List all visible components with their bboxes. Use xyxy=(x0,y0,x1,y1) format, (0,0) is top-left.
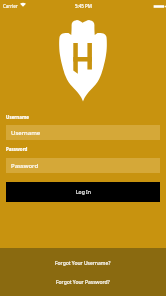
staticText: Username xyxy=(11,129,41,137)
button[interactable]: Password xyxy=(6,158,160,173)
other: Battery xyxy=(153,4,166,9)
button[interactable]: Forgot Your Password? xyxy=(0,276,166,288)
staticText: Log In xyxy=(76,189,91,196)
staticText: Username xyxy=(6,114,30,120)
staticText: Forgot Your Password? xyxy=(56,279,110,286)
other: Wi-Fi signal xyxy=(20,3,26,7)
staticText: 5:45 PM xyxy=(75,3,92,9)
button[interactable]: Log In xyxy=(6,182,160,202)
button[interactable]: Forgot Your Username? xyxy=(0,257,166,269)
button[interactable]: Username xyxy=(6,125,160,140)
staticText: Password xyxy=(6,146,28,152)
staticText: Forgot Your Username? xyxy=(55,260,111,267)
staticText: Password xyxy=(11,162,39,170)
staticText: Carrier xyxy=(3,3,18,9)
